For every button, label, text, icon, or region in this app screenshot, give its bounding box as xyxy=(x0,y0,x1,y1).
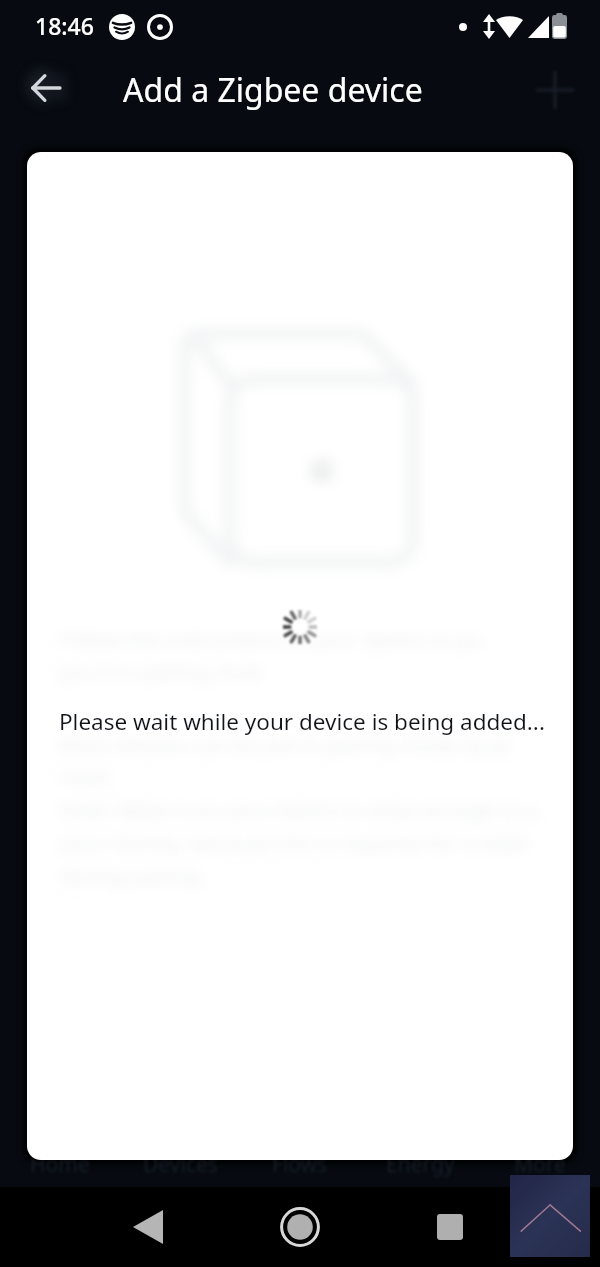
staticText: Add a Zigbee device xyxy=(123,68,423,112)
button[interactable]: Back xyxy=(118,1187,178,1267)
staticText: More xyxy=(514,1150,566,1179)
staticText: Energy xyxy=(386,1150,455,1179)
staticText: Most devices can be put in pairing mode … xyxy=(59,731,514,760)
button[interactable]: Energy xyxy=(360,1141,480,1187)
staticText: Follow the instructions of your device t… xyxy=(59,626,483,655)
staticText: Please wait while your device is being a… xyxy=(59,706,545,737)
button[interactable]: More xyxy=(480,1141,600,1187)
button[interactable]: Back xyxy=(18,60,74,116)
button[interactable]: Recent app preview xyxy=(510,1175,590,1257)
staticText: Flows xyxy=(272,1150,328,1179)
staticText: Home xyxy=(30,1150,90,1179)
button[interactable]: Home xyxy=(0,1141,120,1187)
button[interactable]: Devices xyxy=(120,1141,240,1187)
button[interactable]: Home xyxy=(270,1187,330,1267)
button[interactable]: Add device xyxy=(527,62,583,118)
staticText: Devices xyxy=(143,1150,218,1179)
button[interactable]: Flows xyxy=(240,1141,360,1187)
staticText: 18:46 xyxy=(35,10,94,41)
button[interactable]: Recent apps xyxy=(420,1187,480,1267)
